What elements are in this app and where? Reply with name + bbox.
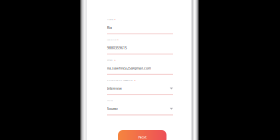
staticText: Email (107, 58, 113, 61)
staticText: Host (107, 98, 113, 102)
staticText: Name (107, 17, 113, 21)
staticText: Next (138, 134, 146, 140)
staticText: * (114, 58, 115, 61)
staticText: * (134, 78, 135, 82)
staticText: * (114, 17, 115, 21)
button[interactable]: Email (107, 55, 173, 75)
button[interactable]: Host (107, 95, 173, 115)
button[interactable]: Mobile (107, 34, 173, 55)
staticText: Ria (107, 25, 112, 30)
staticText: Mobile (107, 38, 116, 41)
staticText: 9880359615 (107, 46, 127, 50)
staticText: * (117, 38, 118, 41)
button[interactable]: Purpose of Meeting (107, 75, 173, 95)
staticText: Interview (107, 86, 122, 91)
staticText: Purpose of Meeting (107, 78, 133, 82)
button[interactable]: Next (118, 130, 166, 140)
staticText: Sourav (107, 106, 118, 111)
button[interactable]: Name (107, 14, 173, 34)
staticText: ria.sawhney25@gmail.com (107, 66, 151, 71)
